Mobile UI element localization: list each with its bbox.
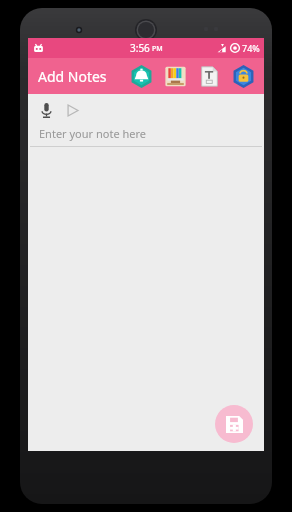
button[interactable]: Text style: [195, 62, 224, 91]
staticText: 74%: [242, 42, 260, 54]
staticText: Add Notes: [38, 67, 107, 86]
staticText: Enter your note here: [39, 126, 146, 141]
button[interactable]: Save note: [215, 405, 253, 443]
button[interactable]: Play voice note: [63, 100, 81, 120]
button[interactable]: Colors: [161, 62, 190, 91]
staticText: 3:56: [130, 41, 150, 55]
button[interactable]: Record voice note: [38, 100, 55, 120]
staticText: PM: [152, 44, 163, 54]
button[interactable]: Lock note: [229, 62, 258, 91]
button[interactable]: Reminder: [127, 62, 156, 91]
